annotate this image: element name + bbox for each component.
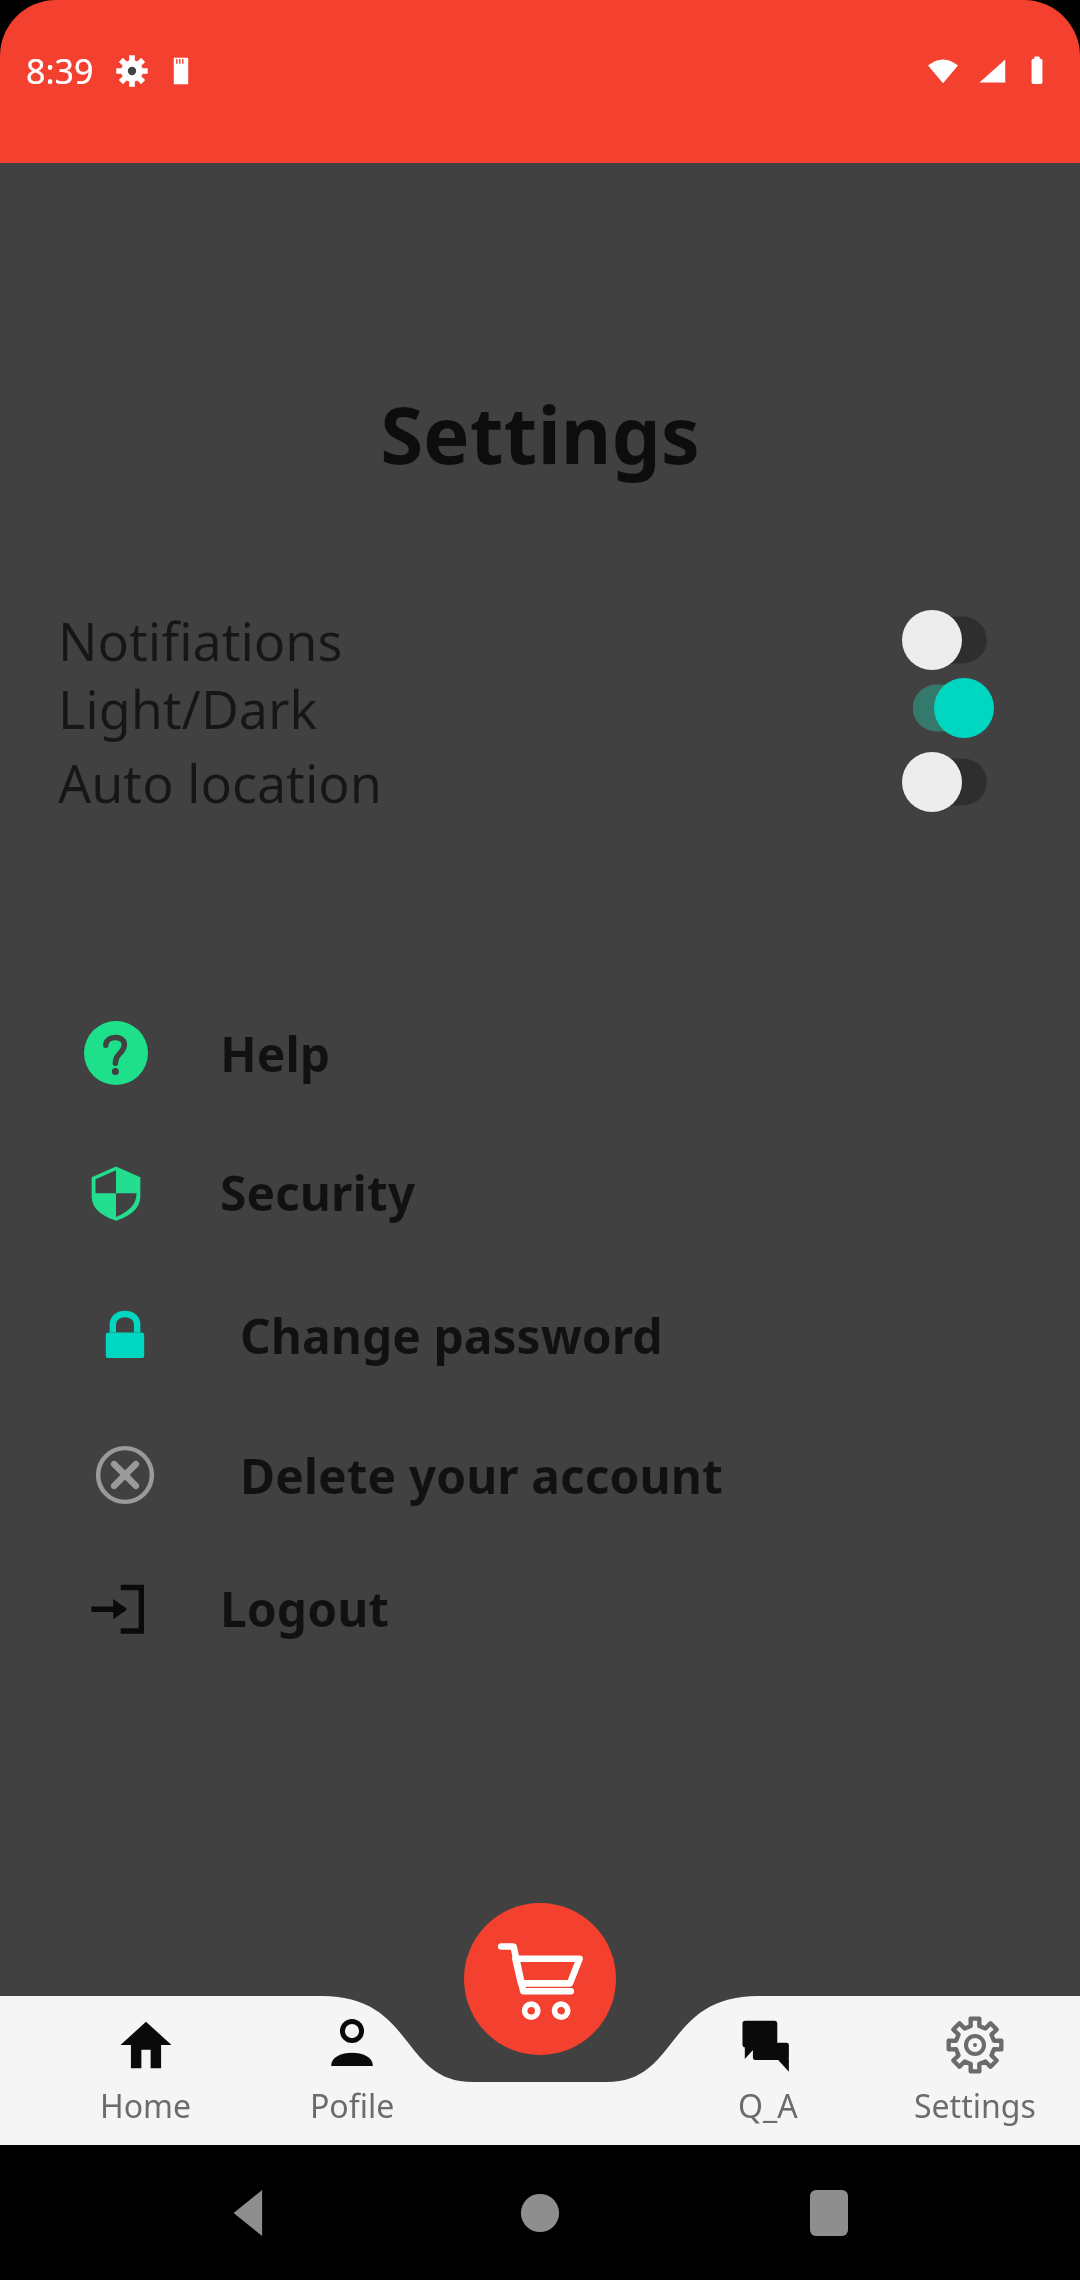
button[interactable]: Q_A [683, 2016, 853, 2128]
button[interactable]: Delete your account [0, 1417, 1080, 1533]
button[interactable]: Notifiations [0, 603, 1080, 677]
staticText: Change password [240, 1303, 663, 1368]
button[interactable]: Settings [890, 2016, 1060, 2128]
button[interactable]: Security [0, 1134, 1080, 1250]
button[interactable]: Pofile [267, 2016, 437, 2128]
staticText: 8:39 [26, 48, 94, 94]
staticText: Home [100, 2084, 192, 2128]
button[interactable]: Home [503, 2176, 577, 2250]
staticText: Security [220, 1160, 416, 1225]
staticText: Delete your account [240, 1443, 723, 1508]
staticText: Pofile [310, 2084, 395, 2128]
staticText: Q_A [738, 2084, 798, 2128]
button[interactable]: Change password [0, 1277, 1080, 1393]
button[interactable]: Logout [0, 1550, 1080, 1666]
button[interactable]: Home [61, 2016, 231, 2128]
button[interactable]: Cart [464, 1903, 616, 2055]
button[interactable]: Auto location [0, 745, 1080, 819]
staticText: Settings [0, 381, 1080, 487]
staticText: Light/Dark [58, 673, 318, 744]
button[interactable]: Recents [792, 2176, 866, 2250]
button[interactable]: Back [215, 2176, 289, 2250]
staticText: Auto location [58, 747, 382, 818]
staticText: Notifiations [58, 605, 343, 676]
staticText: Settings [914, 2084, 1036, 2128]
button[interactable]: Light/Dark [0, 671, 1080, 745]
staticText: Logout [220, 1576, 390, 1641]
button[interactable]: Help [0, 995, 1080, 1111]
staticText: Help [220, 1021, 331, 1086]
